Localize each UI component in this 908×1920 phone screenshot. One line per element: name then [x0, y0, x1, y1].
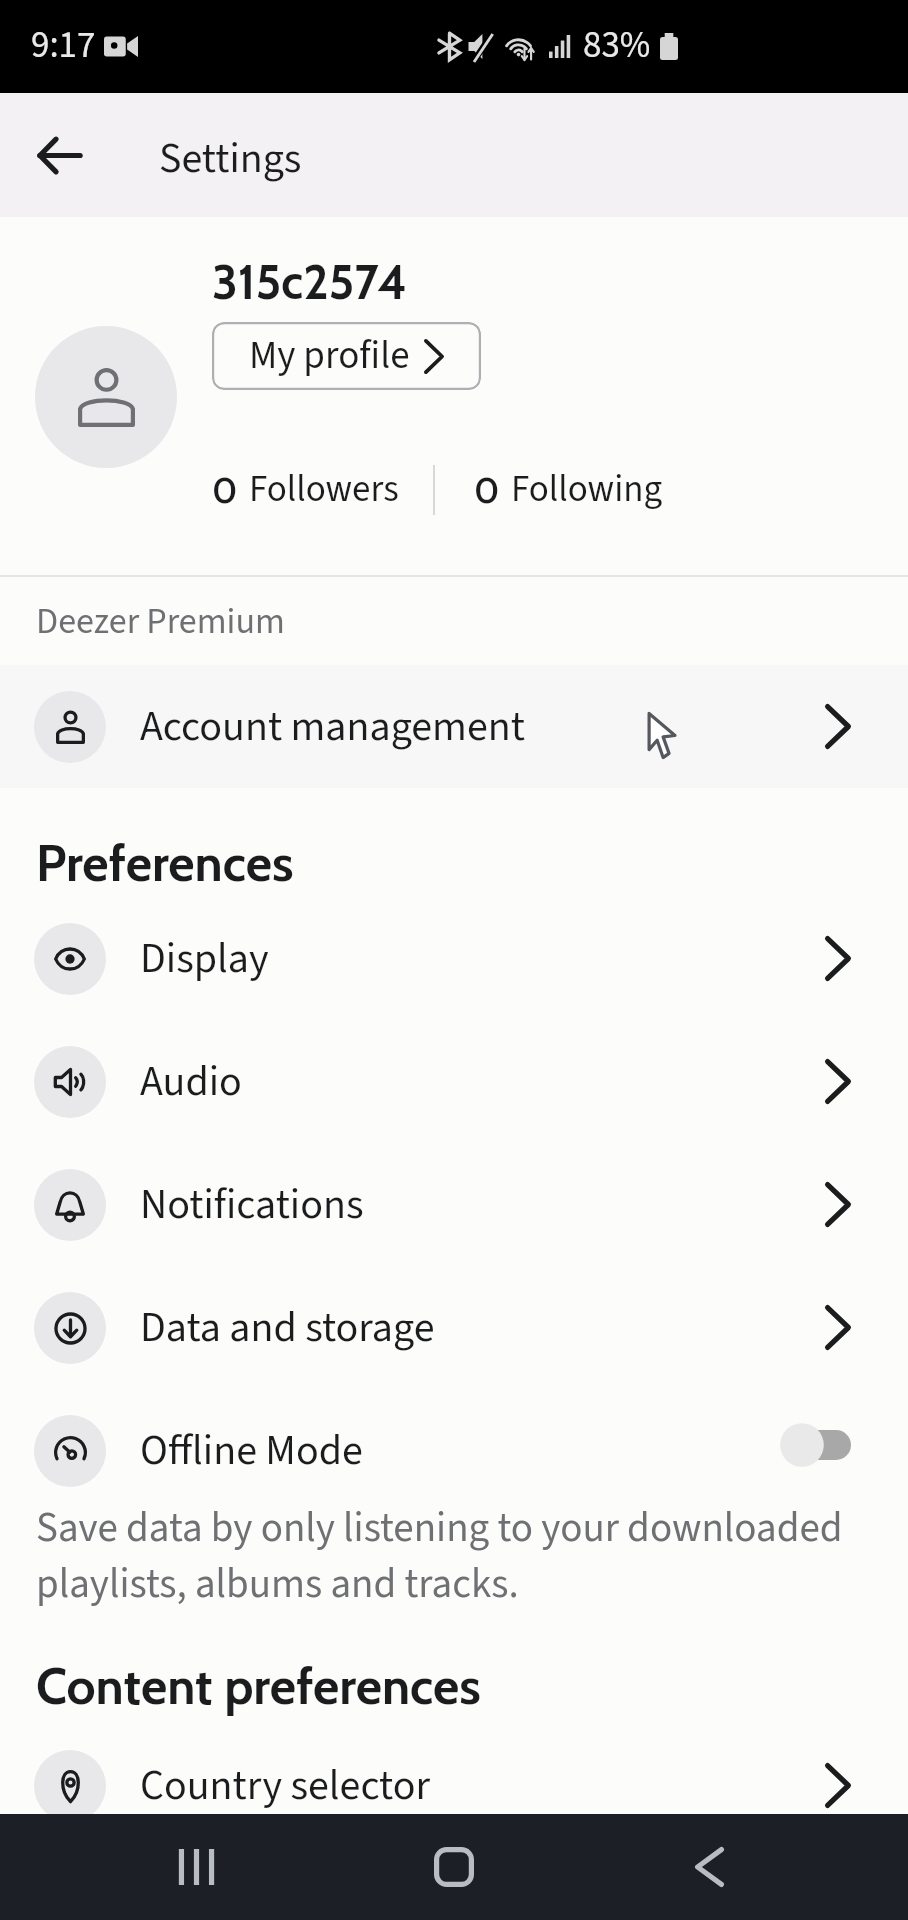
staticText: 0 [474, 468, 500, 512]
button[interactable]: 0 [212, 463, 399, 516]
staticText: 9:17 [31, 19, 96, 72]
staticText: Followers [249, 463, 399, 516]
button[interactable]: Home [414, 1830, 494, 1904]
staticText: Save data by only listening to your down… [36, 1499, 846, 1614]
button[interactable]: 0 [474, 463, 663, 516]
staticText: Audio [140, 1052, 242, 1112]
staticText: My profile [249, 328, 410, 384]
staticText: Account management [140, 697, 525, 757]
button[interactable]: Back [19, 115, 99, 195]
staticText: Display [140, 929, 269, 989]
staticText: Offline Mode [140, 1421, 363, 1481]
staticText: Deezer Premium [36, 596, 285, 647]
staticText: Notifications [140, 1175, 364, 1235]
staticText: 83% [583, 19, 651, 72]
staticText: Country selector [140, 1756, 431, 1816]
button[interactable]: Offline Mode [0, 1389, 908, 1512]
button[interactable]: My profile [212, 322, 481, 390]
button[interactable]: Offline Mode toggle [781, 1421, 851, 1469]
button[interactable]: Recent apps [156, 1833, 236, 1901]
button[interactable]: Back [669, 1830, 749, 1904]
staticText: Preferences [36, 832, 294, 894]
staticText: 0 [212, 468, 238, 512]
staticText: Settings [159, 129, 302, 189]
staticText: 315c2574 [212, 253, 408, 311]
button[interactable]: Display [0, 897, 908, 1020]
button[interactable]: Country selector [0, 1724, 908, 1847]
button[interactable]: Notifications [0, 1143, 908, 1266]
staticText: Data and storage [140, 1298, 435, 1358]
button[interactable]: Audio [0, 1020, 908, 1143]
staticText: Following [511, 463, 663, 516]
staticText: Content preferences [36, 1655, 481, 1717]
button[interactable]: Account management [0, 665, 908, 788]
button[interactable]: Data and storage [0, 1266, 908, 1389]
